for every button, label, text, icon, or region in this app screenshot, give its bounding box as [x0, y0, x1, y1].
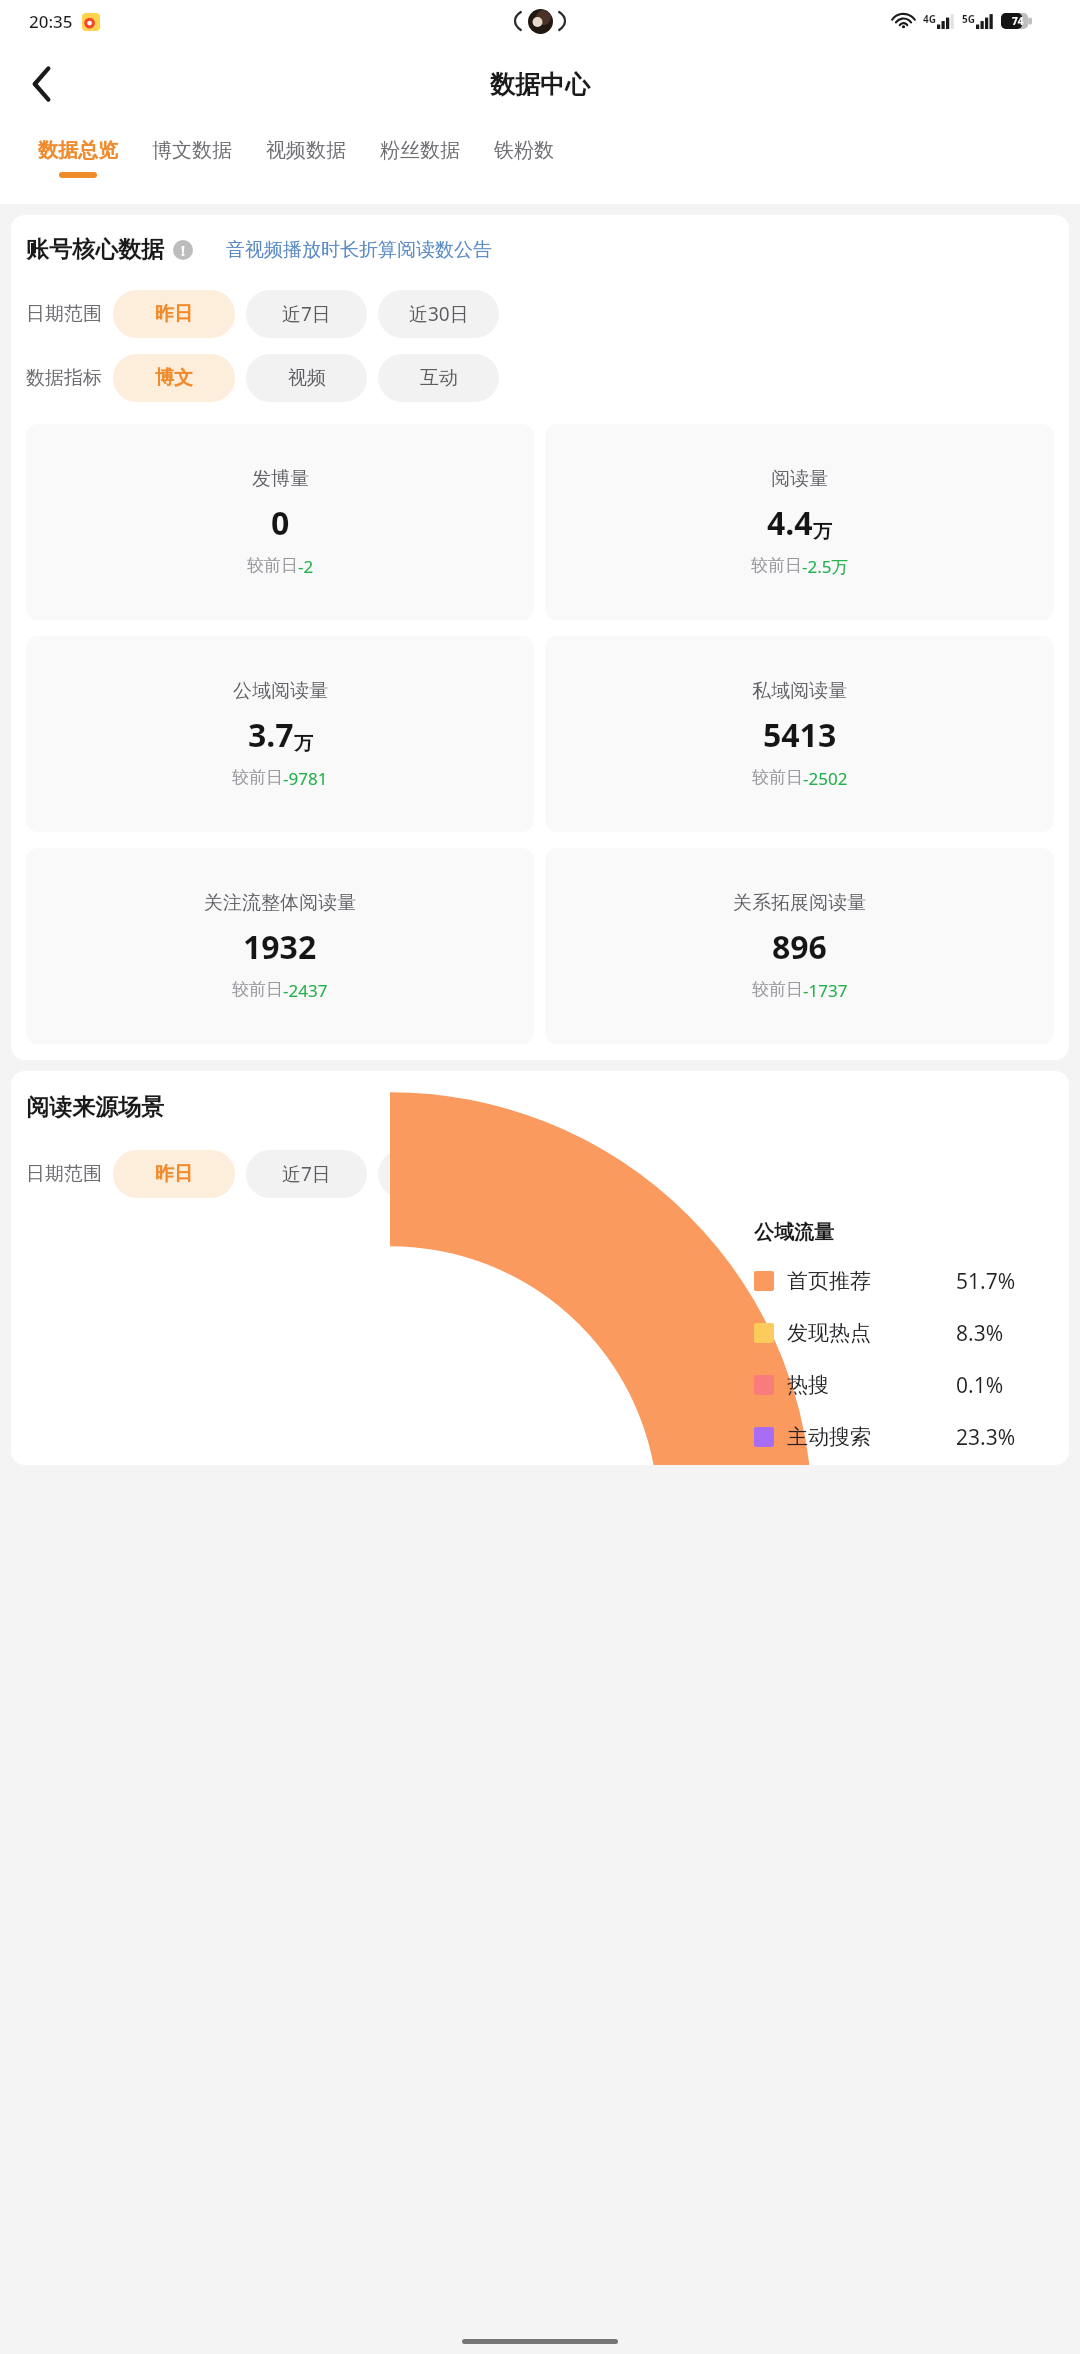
button[interactable]: 近30日	[378, 1150, 499, 1198]
staticText: 0	[271, 501, 290, 545]
staticText: 视频数据	[266, 138, 346, 163]
staticText: 3.7	[248, 713, 294, 757]
button[interactable]: 粉丝数据	[363, 126, 477, 172]
staticText: 粉丝数据	[380, 138, 460, 163]
staticText: 昨日	[155, 1162, 193, 1186]
staticText: 23.3%	[956, 1423, 1016, 1452]
button[interactable]: 数据总览	[21, 126, 135, 178]
staticText: 万	[813, 520, 832, 544]
staticText: 近7日	[282, 1161, 331, 1187]
staticText: 阅读来源场景	[26, 1093, 164, 1122]
staticText: 公域流量	[754, 1220, 834, 1245]
staticText: 音视频播放时长折算阅读数公告	[226, 238, 492, 262]
staticText: 较前日	[232, 767, 283, 788]
staticText: 视频	[288, 366, 326, 390]
staticText: -2.5万	[802, 555, 849, 578]
button[interactable]: 昨日	[113, 1150, 235, 1198]
button[interactable]: Info	[173, 240, 193, 260]
staticText: 数据总览	[38, 138, 118, 163]
staticText: 铁粉数	[494, 138, 554, 163]
staticText: 1932	[243, 925, 317, 969]
staticText: 万	[294, 732, 313, 756]
button[interactable]: 关注流整体阅读量	[26, 848, 534, 1044]
staticText: 首页推荐	[787, 1268, 871, 1294]
button[interactable]: 博文	[113, 354, 235, 402]
staticText: 0.1%	[956, 1371, 1004, 1400]
staticText: 阅读量	[771, 467, 828, 491]
staticText: 博文数据	[152, 138, 232, 163]
button[interactable]: 近30日	[378, 290, 499, 338]
button[interactable]: 阅读量	[545, 424, 1054, 620]
staticText: 近30日	[409, 301, 469, 327]
staticText: 关注流整体阅读量	[204, 891, 356, 915]
button[interactable]: 视频数据	[249, 126, 363, 172]
staticText: -2437	[283, 979, 328, 1002]
staticText: -2502	[803, 767, 848, 790]
staticText: 发现热点	[787, 1320, 871, 1346]
staticText: 较前日	[751, 555, 802, 576]
staticText: 热搜	[787, 1372, 829, 1398]
button[interactable]: 主动搜索	[754, 1411, 1054, 1463]
staticText: !	[181, 241, 185, 260]
button[interactable]: Back	[14, 56, 70, 112]
staticText: 主动搜索	[787, 1424, 871, 1450]
staticText: 较前日	[247, 555, 298, 576]
staticText: 互动	[420, 366, 458, 390]
staticText: 数据指标	[26, 366, 102, 390]
staticText: 5413	[763, 713, 837, 757]
staticText: 20:35	[29, 10, 73, 33]
staticText: 日期范围	[26, 302, 102, 326]
button[interactable]: 昨日	[113, 290, 235, 338]
button[interactable]: 视频	[246, 354, 367, 402]
staticText: 近7日	[282, 301, 331, 327]
staticText: 8.3%	[956, 1319, 1004, 1348]
button[interactable]: 博文数据	[135, 126, 249, 172]
button[interactable]: 首页推荐	[754, 1255, 1054, 1307]
staticText: 数据中心	[490, 69, 590, 100]
staticText: -1737	[803, 979, 848, 1002]
button[interactable]: 音视频播放时长折算阅读数公告	[226, 238, 492, 262]
button[interactable]: 近7日	[246, 1150, 367, 1198]
staticText: 私域阅读量	[752, 679, 847, 703]
button[interactable]: 私域阅读量	[545, 636, 1054, 832]
staticText: 较前日	[752, 767, 803, 788]
staticText: 日期范围	[26, 1162, 102, 1186]
staticText: -2	[298, 555, 314, 578]
staticText: 较前日	[232, 979, 283, 1000]
button[interactable]: 发博量	[26, 424, 534, 620]
staticText: 5G	[962, 12, 975, 26]
button[interactable]: 发现热点	[754, 1307, 1054, 1359]
staticText: -9781	[283, 767, 328, 790]
staticText: 74	[1012, 14, 1024, 28]
staticText: 51.7%	[956, 1267, 1016, 1296]
button[interactable]: 关系拓展阅读量	[545, 848, 1054, 1044]
button[interactable]: 铁粉数	[477, 126, 571, 172]
button[interactable]: 公域阅读量	[26, 636, 534, 832]
button[interactable]: 近7日	[246, 290, 367, 338]
staticText: 昨日	[155, 302, 193, 326]
staticText: 较前日	[752, 979, 803, 1000]
staticText: 账号核心数据	[26, 235, 164, 264]
staticText: 公域阅读量	[233, 679, 328, 703]
staticText: 关系拓展阅读量	[733, 891, 866, 915]
staticText: 4G	[923, 12, 936, 26]
staticText: 896	[772, 925, 827, 969]
staticText: 4.4	[767, 501, 813, 545]
button[interactable]: 热搜	[754, 1359, 1054, 1411]
staticText: 发博量	[252, 467, 309, 491]
button[interactable]: 互动	[378, 354, 499, 402]
staticText: 博文	[155, 366, 193, 390]
